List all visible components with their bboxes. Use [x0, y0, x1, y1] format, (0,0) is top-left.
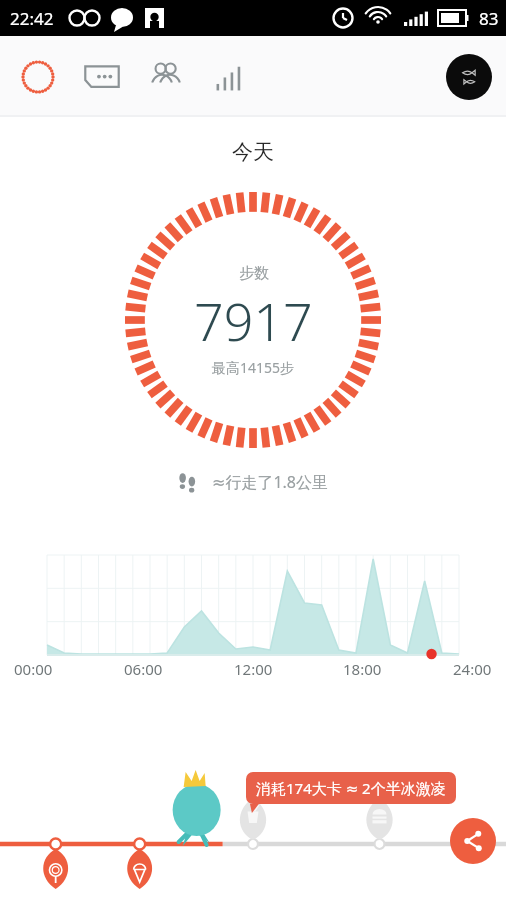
staticText: 24:00: [453, 659, 492, 679]
staticText: 今天: [0, 139, 506, 165]
button[interactable]: Profile: [446, 54, 492, 100]
staticText: 最高14155步: [212, 358, 295, 377]
staticText: 06:00: [124, 659, 163, 679]
staticText: ≈行走了1.8公里: [212, 471, 328, 493]
button[interactable]: Messages: [76, 51, 128, 103]
staticText: 步数: [239, 264, 269, 283]
button[interactable]: Friends: [140, 51, 192, 103]
staticText: 消耗174大卡 ≈ 2个半冰激凌: [256, 778, 446, 798]
staticText: 00:00: [14, 659, 53, 679]
staticText: 7917: [194, 285, 313, 356]
staticText: 22:42: [10, 7, 54, 30]
button[interactable]: Share: [450, 818, 496, 864]
button[interactable]: Activity: [12, 51, 64, 103]
staticText: 83: [479, 7, 499, 30]
staticText: 18:00: [343, 659, 382, 679]
button[interactable]: 消耗174大卡 ≈ 2个半冰激凌: [246, 772, 456, 804]
button[interactable]: Statistics: [204, 51, 256, 103]
staticText: 12:00: [234, 659, 273, 679]
